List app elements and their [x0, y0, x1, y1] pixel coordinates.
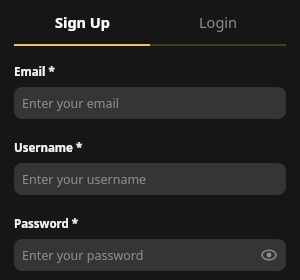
staticText: Email *	[14, 64, 55, 80]
staticText: Sign Up	[55, 12, 110, 32]
button[interactable]: Login	[150, 0, 286, 44]
staticText: Password *	[14, 216, 79, 232]
button[interactable]: Enter your username	[14, 163, 286, 195]
button[interactable]: Sign Up	[14, 0, 150, 44]
button[interactable]: Enter your email	[14, 87, 286, 119]
staticText: Enter your password	[22, 247, 144, 264]
button[interactable]: Enter your password	[14, 239, 286, 271]
button[interactable]: Show password	[258, 244, 280, 266]
staticText: Enter your email	[22, 95, 119, 112]
staticText: Username *	[14, 140, 83, 156]
staticText: Login	[199, 12, 237, 32]
staticText: Enter your username	[22, 171, 147, 188]
